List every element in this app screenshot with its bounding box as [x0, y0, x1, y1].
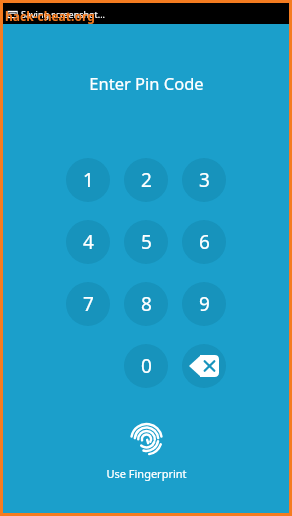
- button[interactable]: 7: [66, 282, 110, 326]
- staticText: 5: [141, 229, 152, 255]
- button[interactable]: Use Fingerprint: [100, 464, 193, 483]
- button[interactable]: Backspace: [182, 344, 226, 388]
- button[interactable]: 2: [124, 158, 168, 202]
- button[interactable]: Use Fingerprint: [124, 416, 168, 460]
- staticText: 4: [83, 229, 94, 255]
- staticText: Use Fingerprint: [106, 466, 187, 481]
- button[interactable]: 1: [66, 158, 110, 202]
- button[interactable]: 4: [66, 220, 110, 264]
- button[interactable]: 8: [124, 282, 168, 326]
- staticText: 7: [83, 291, 94, 317]
- staticText: hack-cheat.org: [5, 8, 95, 24]
- button[interactable]: 6: [182, 220, 226, 264]
- staticText: 0: [141, 353, 152, 379]
- button[interactable]: 9: [182, 282, 226, 326]
- staticText: Enter Pin Code: [89, 72, 204, 94]
- staticText: 8: [141, 291, 152, 317]
- button[interactable]: 3: [182, 158, 226, 202]
- staticText: Saving screenshot...: [21, 8, 106, 20]
- button[interactable]: 0: [124, 344, 168, 388]
- staticText: 3: [199, 167, 210, 193]
- staticText: 2: [141, 167, 152, 193]
- button[interactable]: 5: [124, 220, 168, 264]
- staticText: 9: [199, 291, 210, 317]
- staticText: 6: [199, 229, 210, 255]
- staticText: 1: [83, 167, 94, 193]
